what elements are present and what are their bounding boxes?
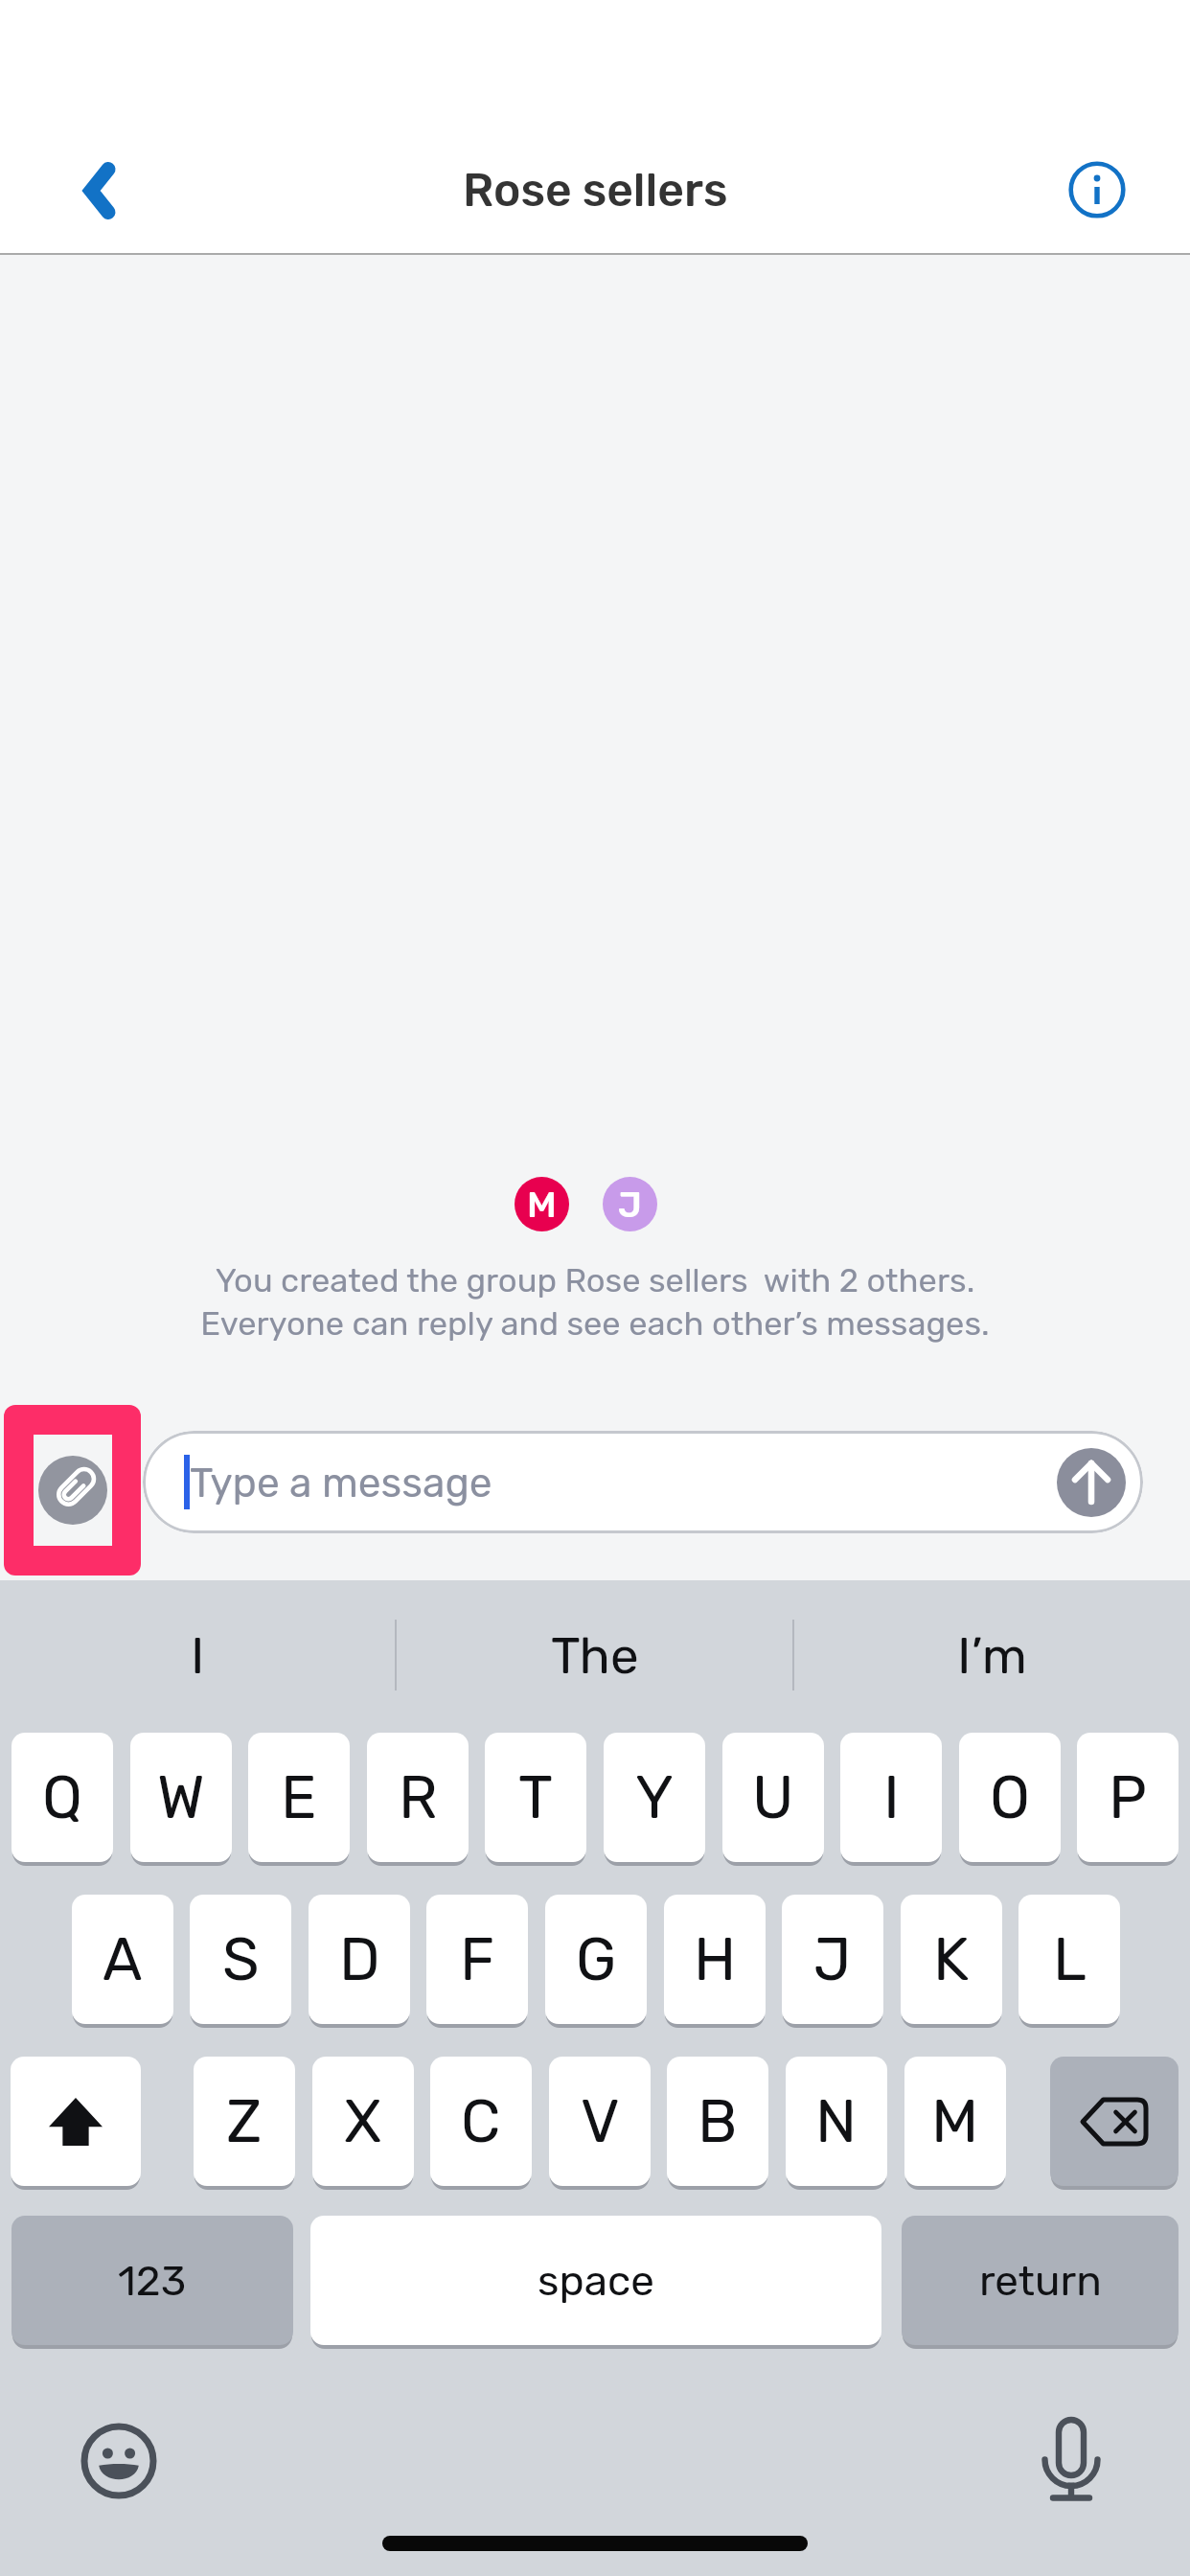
staticText: F bbox=[460, 1924, 495, 1994]
button[interactable]: I’m bbox=[794, 1584, 1190, 1726]
staticText: U bbox=[752, 1762, 794, 1832]
button[interactable]: H bbox=[664, 1895, 766, 2024]
staticText: H bbox=[694, 1924, 737, 1994]
button[interactable]: P bbox=[1077, 1733, 1179, 1862]
staticText: W bbox=[157, 1762, 205, 1832]
staticText: I bbox=[191, 1625, 205, 1686]
button[interactable]: Voice input bbox=[1028, 2416, 1114, 2502]
button[interactable]: N bbox=[786, 2057, 887, 2186]
staticText: The bbox=[551, 1625, 639, 1686]
staticText: T bbox=[518, 1762, 553, 1832]
staticText: Q bbox=[42, 1762, 82, 1832]
staticText: G bbox=[576, 1924, 617, 1994]
staticText: A bbox=[103, 1924, 143, 1994]
staticText: Y bbox=[635, 1762, 675, 1832]
button[interactable]: F bbox=[426, 1895, 528, 2024]
button[interactable]: U bbox=[722, 1733, 824, 1862]
staticText: R bbox=[399, 1762, 438, 1832]
staticText: V bbox=[581, 2086, 620, 2156]
button[interactable]: X bbox=[312, 2057, 414, 2186]
button[interactable]: G bbox=[545, 1895, 647, 2024]
button[interactable]: Shift bbox=[11, 2057, 141, 2186]
staticText: M bbox=[527, 1183, 557, 1226]
staticText: Type a message bbox=[190, 1459, 492, 1506]
staticText: X bbox=[344, 2086, 382, 2156]
button[interactable]: D bbox=[309, 1895, 410, 2024]
staticText: return bbox=[979, 2256, 1102, 2306]
button[interactable]: Z bbox=[194, 2057, 295, 2186]
button[interactable]: M bbox=[904, 2057, 1006, 2186]
staticText: B bbox=[698, 2086, 738, 2156]
button[interactable]: E bbox=[248, 1733, 350, 1862]
button[interactable]: Q bbox=[11, 1733, 113, 1862]
staticText: Rose sellers bbox=[463, 163, 728, 218]
button[interactable]: I bbox=[840, 1733, 942, 1862]
button[interactable]: Backspace bbox=[1050, 2057, 1179, 2186]
button[interactable]: Back bbox=[50, 141, 149, 241]
button[interactable]: space bbox=[310, 2216, 881, 2345]
button[interactable]: V bbox=[549, 2057, 651, 2186]
staticText: Z bbox=[226, 2086, 263, 2156]
button[interactable]: 123 bbox=[11, 2216, 293, 2345]
staticText: M bbox=[931, 2086, 979, 2156]
staticText: L bbox=[1053, 1924, 1087, 1994]
button[interactable]: T bbox=[485, 1733, 586, 1862]
staticText: D bbox=[339, 1924, 380, 1994]
button[interactable]: The bbox=[397, 1584, 792, 1726]
staticText: I bbox=[883, 1762, 900, 1832]
staticText: J bbox=[618, 1183, 642, 1226]
staticText: S bbox=[222, 1924, 260, 1994]
button[interactable]: O bbox=[959, 1733, 1061, 1862]
button[interactable]: J bbox=[782, 1895, 883, 2024]
button[interactable]: L bbox=[1018, 1895, 1120, 2024]
button[interactable]: R bbox=[367, 1733, 469, 1862]
button[interactable]: Y bbox=[604, 1733, 705, 1862]
button[interactable]: Send bbox=[1057, 1448, 1126, 1517]
button[interactable]: I bbox=[0, 1584, 395, 1726]
button[interactable]: C bbox=[430, 2057, 532, 2186]
staticText: C bbox=[461, 2086, 501, 2156]
staticText: P bbox=[1109, 1762, 1147, 1832]
button[interactable]: S bbox=[190, 1895, 291, 2024]
staticText: I’m bbox=[957, 1625, 1027, 1686]
button[interactable]: A bbox=[72, 1895, 173, 2024]
staticText: N bbox=[815, 2086, 858, 2156]
button[interactable]: Attach file bbox=[4, 1405, 141, 1575]
staticText: K bbox=[933, 1924, 970, 1994]
button[interactable]: K bbox=[901, 1895, 1002, 2024]
button[interactable]: return bbox=[902, 2216, 1179, 2345]
button[interactable]: Type a message bbox=[143, 1431, 1143, 1533]
staticText: 123 bbox=[118, 2256, 187, 2306]
staticText: space bbox=[538, 2256, 654, 2306]
staticText: J bbox=[813, 1924, 852, 1994]
button[interactable]: W bbox=[130, 1733, 232, 1862]
button[interactable]: B bbox=[667, 2057, 768, 2186]
button[interactable]: Emoji keyboard bbox=[79, 2421, 159, 2501]
staticText: O bbox=[990, 1762, 1030, 1832]
staticText: E bbox=[281, 1762, 317, 1832]
staticText: You created the group Rose sellers with … bbox=[200, 1261, 990, 1343]
button[interactable]: Group info bbox=[1049, 142, 1145, 238]
